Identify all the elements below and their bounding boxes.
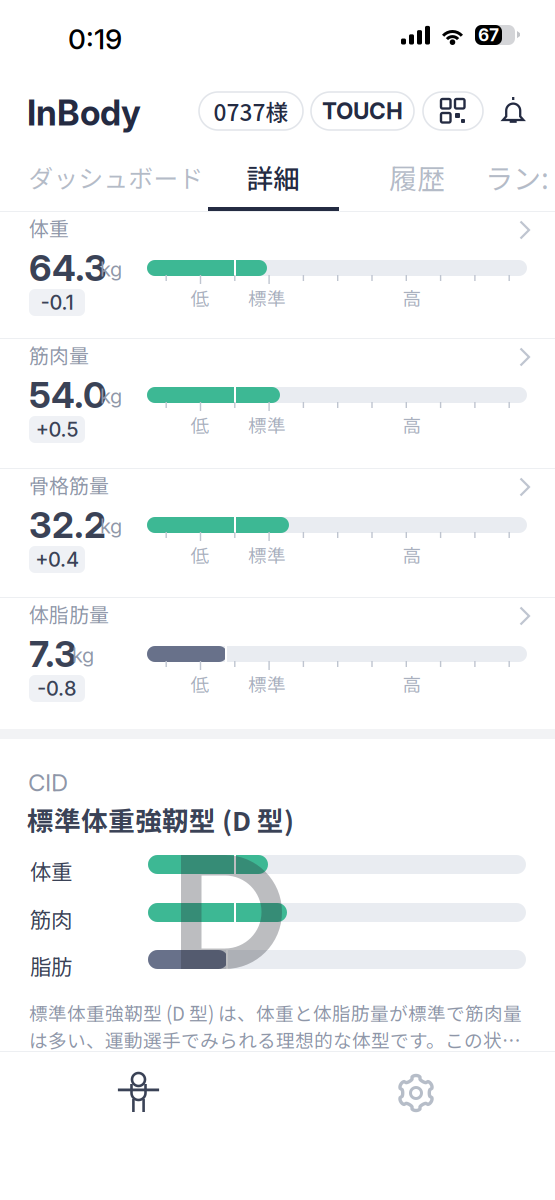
- staticText: CID: [28, 768, 68, 797]
- staticText: ダッシュボード: [28, 159, 203, 195]
- staticText: 0:19: [68, 22, 122, 56]
- staticText: 54.0: [29, 373, 107, 417]
- staticText: 低: [190, 541, 209, 568]
- staticText: 高: [402, 284, 421, 311]
- button[interactable]: 筋肉量: [0, 339, 555, 468]
- button[interactable]: 骨格筋量: [0, 469, 555, 597]
- staticText: 筋肉: [30, 903, 72, 934]
- staticText: 低: [190, 284, 209, 311]
- staticText: -0.1: [40, 290, 73, 315]
- staticText: kg: [100, 384, 122, 408]
- staticText: 標準: [248, 411, 286, 438]
- button[interactable]: TOUCH: [311, 92, 414, 130]
- staticText: ラン:: [485, 157, 549, 197]
- staticText: 64.3: [29, 246, 107, 290]
- staticText: -0.8: [37, 676, 77, 701]
- button[interactable]: 体重: [0, 212, 555, 338]
- staticText: kg: [100, 514, 122, 538]
- staticText: TOUCH: [322, 97, 403, 125]
- staticText: 低: [190, 411, 209, 438]
- staticText: 標準: [248, 541, 286, 568]
- staticText: 標準体重強靭型 (D 型) は、体重と体脂肪量が標準で筋肉量は多い、運動選手でみ…: [29, 999, 533, 1053]
- staticText: 高: [402, 411, 421, 438]
- staticText: +0.4: [35, 547, 79, 572]
- staticText: 低: [190, 670, 209, 697]
- staticText: 標準: [248, 284, 286, 311]
- staticText: 体重: [30, 855, 72, 886]
- staticText: kg: [72, 643, 94, 667]
- button[interactable]: 体脂肪量: [0, 598, 555, 729]
- button[interactable]: Settings: [277, 1053, 555, 1133]
- staticText: 標準体重強靭型 (D 型): [27, 800, 294, 839]
- staticText: +0.5: [35, 417, 78, 442]
- staticText: 高: [402, 670, 421, 697]
- staticText: 体脂肪量: [29, 599, 109, 628]
- button[interactable]: 履歴: [377, 152, 457, 202]
- staticText: 32.2: [29, 503, 106, 547]
- staticText: 脂肪: [30, 950, 72, 981]
- staticText: 標準: [248, 670, 286, 697]
- button[interactable]: Body composition: [0, 1053, 277, 1133]
- button[interactable]: ダッシュボード: [26, 152, 206, 202]
- staticText: 高: [402, 541, 421, 568]
- staticText: 履歴: [389, 157, 445, 197]
- button[interactable]: Notifications: [494, 92, 534, 130]
- button[interactable]: 詳細: [208, 152, 339, 214]
- button[interactable]: Scan QR code: [423, 92, 483, 130]
- staticText: 筋肉量: [29, 340, 89, 369]
- staticText: 体重: [29, 213, 69, 242]
- button[interactable]: ラン:: [474, 152, 555, 202]
- staticText: 67: [478, 24, 499, 45]
- staticText: 骨格筋量: [29, 470, 109, 499]
- staticText: 7.3: [29, 632, 77, 676]
- button[interactable]: 0737様: [199, 92, 303, 130]
- staticText: 詳細: [246, 158, 300, 196]
- staticText: InBody: [27, 92, 141, 134]
- staticText: 0737様: [213, 95, 288, 127]
- staticText: kg: [100, 257, 122, 281]
